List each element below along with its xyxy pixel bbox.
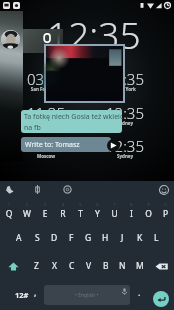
button[interactable]: 3 <box>36 202 54 226</box>
staticText: 9 <box>140 202 157 207</box>
button[interactable]: K <box>131 227 148 249</box>
button[interactable]: 7 <box>106 202 123 226</box>
staticText: 11:35 <box>20 103 72 123</box>
staticText: 0 <box>157 202 174 207</box>
button[interactable]: 4 <box>54 202 72 226</box>
staticText: New York <box>99 86 151 92</box>
staticText: O <box>140 208 157 220</box>
button[interactable]: Send <box>107 139 120 152</box>
button[interactable]: 6 <box>89 202 106 226</box>
staticText: I <box>123 208 140 220</box>
button[interactable]: Handwriting <box>3 183 16 196</box>
staticText: Sydney <box>99 120 151 126</box>
button[interactable]: C <box>63 255 80 277</box>
button[interactable]: 1 <box>0 202 18 226</box>
staticText: A <box>16 232 22 244</box>
button[interactable]: D <box>46 227 63 249</box>
staticText: V <box>86 260 92 272</box>
button[interactable]: 12# <box>2 284 42 305</box>
staticText: R <box>54 208 72 220</box>
staticText: • English • <box>75 292 99 299</box>
staticText: 05:35 <box>20 136 72 156</box>
button[interactable]: 8 <box>123 202 140 226</box>
button[interactable]: Clipboard <box>31 183 44 196</box>
button[interactable]: V <box>80 255 97 277</box>
staticText: H <box>102 232 109 244</box>
button[interactable]: J <box>114 227 131 249</box>
button[interactable]: 0 <box>157 202 174 226</box>
button[interactable]: 9 <box>140 202 157 226</box>
staticText: 6 <box>89 202 106 207</box>
staticText: 03:35 <box>99 69 151 89</box>
staticText: C <box>69 260 75 272</box>
button[interactable]: 5 <box>72 202 89 226</box>
button[interactable]: Emoji <box>157 183 170 196</box>
staticText: E <box>36 208 54 220</box>
staticText: , <box>34 286 37 298</box>
button[interactable]: Shift <box>0 255 27 277</box>
button[interactable]: Backspace <box>148 255 174 277</box>
staticText: G <box>85 232 92 244</box>
button[interactable]: B <box>97 255 114 277</box>
staticText: W <box>18 208 36 220</box>
staticText: 12:35 <box>99 136 151 156</box>
staticText: N <box>119 260 126 272</box>
button[interactable]: X <box>45 255 63 277</box>
staticText: Ta fotkę niech Gosia też wkleić na fb <box>24 112 122 132</box>
staticText: Moscow <box>20 153 72 159</box>
staticText: P <box>157 208 174 220</box>
button[interactable]: A <box>10 227 28 249</box>
staticText: M <box>136 260 144 272</box>
staticText: S <box>35 232 40 244</box>
button[interactable]: F <box>63 227 80 249</box>
staticText: T <box>72 208 89 220</box>
staticText: D <box>51 232 58 244</box>
button[interactable]: Enter <box>147 285 174 310</box>
button[interactable]: H <box>97 227 114 249</box>
staticText: Q <box>0 208 18 220</box>
staticText: San Francisco <box>20 86 72 92</box>
staticText: . <box>138 286 141 298</box>
button[interactable]: Settings <box>61 183 74 196</box>
button[interactable]: G <box>80 227 97 249</box>
button[interactable]: M <box>131 255 148 277</box>
staticText: J <box>121 232 124 244</box>
button[interactable]: 2 <box>18 202 36 226</box>
staticText: 12# <box>15 290 29 300</box>
staticText: 03:35 <box>20 69 72 89</box>
staticText: 12:35 <box>99 103 151 123</box>
staticText: 12:35 <box>47 9 141 59</box>
staticText: Write to: Tomasz <box>25 140 80 150</box>
staticText: Z <box>34 260 39 272</box>
staticText: 8 <box>123 202 140 207</box>
button[interactable]: • English • <box>44 285 130 305</box>
staticText: 2 <box>18 202 36 207</box>
button[interactable]: Ta fotkę niech Gosia też wkleić na fb <box>21 110 122 133</box>
button[interactable]: N <box>114 255 131 277</box>
staticText: X <box>52 260 57 272</box>
button[interactable]: L <box>148 227 165 249</box>
staticText: B <box>103 260 109 272</box>
button[interactable]: , <box>28 284 43 305</box>
staticText: Y <box>89 208 106 220</box>
staticText: K <box>137 232 143 244</box>
button[interactable]: S <box>28 227 46 249</box>
button[interactable]: Contact avatar <box>1 30 20 49</box>
button[interactable]: Write to: Tomasz <box>21 137 111 152</box>
button[interactable]: . <box>132 284 146 305</box>
staticText: Sydney <box>99 153 151 159</box>
staticText: U <box>106 208 123 220</box>
staticText: F <box>69 232 74 244</box>
staticText: 3 <box>36 202 54 207</box>
staticText: L <box>154 232 159 244</box>
staticText: 4 <box>54 202 72 207</box>
button[interactable]: Voice input <box>119 286 129 296</box>
button[interactable]: Z <box>27 255 45 277</box>
staticText: Moscow <box>20 120 72 126</box>
